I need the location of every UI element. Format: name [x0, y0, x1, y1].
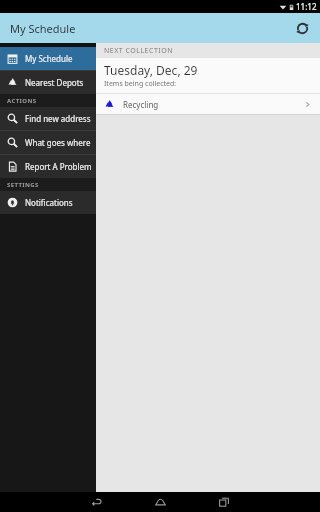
- button[interactable]: Recent apps: [204, 492, 244, 512]
- staticText: NEXT COLLECTION: [104, 46, 173, 56]
- staticText: Notifications: [25, 197, 73, 208]
- staticText: SETTINGS: [7, 181, 39, 189]
- staticText: ACTIONS: [7, 97, 37, 105]
- button[interactable]: Recycling: [96, 94, 320, 114]
- staticText: Items being collected:: [104, 79, 177, 89]
- staticText: Report A Problem: [25, 161, 92, 172]
- button[interactable]: Find new address: [0, 107, 96, 130]
- staticText: Find new address: [25, 113, 91, 124]
- staticText: My Schedule: [10, 21, 76, 36]
- staticText: Recycling: [123, 99, 159, 110]
- button[interactable]: My Schedule: [0, 47, 96, 70]
- button[interactable]: What goes where: [0, 131, 96, 154]
- staticText: Tuesday, Dec, 29: [104, 62, 198, 78]
- staticText: What goes where: [25, 137, 91, 148]
- button[interactable]: Back: [76, 492, 116, 512]
- staticText: 11:12: [296, 1, 317, 12]
- button[interactable]: Notifications: [0, 191, 96, 214]
- button[interactable]: Nearest Depots: [0, 71, 96, 94]
- staticText: Nearest Depots: [25, 77, 84, 88]
- button[interactable]: Home: [140, 492, 180, 512]
- button[interactable]: Report A Problem: [0, 155, 96, 178]
- button[interactable]: Refresh: [290, 16, 314, 40]
- staticText: My Schedule: [25, 53, 73, 64]
